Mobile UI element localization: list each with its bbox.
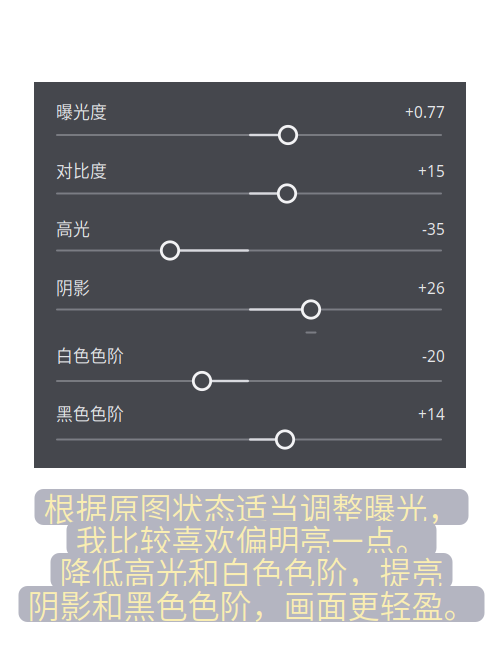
staticText: 高光	[56, 216, 90, 240]
button[interactable]: 阴影	[0, 0, 500, 652]
button[interactable]: 高光	[0, 0, 500, 652]
staticText: 我比较喜欢偏明亮一点。	[75, 516, 427, 562]
button[interactable]: 黑色色阶	[0, 0, 500, 652]
staticText: 对比度	[56, 158, 107, 182]
staticText: 白色色阶	[56, 343, 124, 367]
staticText: +14	[418, 404, 445, 424]
staticText: 曝光度	[56, 99, 107, 123]
button[interactable]: 曝光度	[0, 0, 500, 652]
staticText: 根据原图状态适当调整曝光，	[43, 484, 459, 530]
button[interactable]: 对比度	[0, 0, 500, 652]
staticText: +15	[418, 161, 445, 181]
staticText: -20	[422, 346, 445, 366]
staticText: +26	[418, 278, 445, 298]
staticText: 阴影和黑色色阶，画面更轻盈。	[27, 581, 475, 627]
staticText: +0.77	[405, 102, 445, 122]
staticText: 阴影	[56, 275, 90, 299]
button[interactable]: 白色色阶	[0, 0, 500, 652]
staticText: 降低高光和白色色阶，提亮	[59, 548, 443, 594]
staticText: -35	[422, 219, 445, 239]
staticText: 黑色色阶	[56, 401, 124, 425]
